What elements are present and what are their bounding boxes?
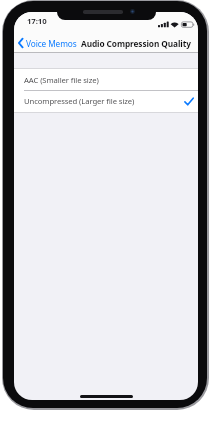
button[interactable]: Uncompressed (Larger file size) [14, 90, 198, 112]
button[interactable]: Voice Memos [14, 32, 77, 54]
staticText: Audio Compression Quality [81, 38, 191, 49]
staticText: AAC (Smaller file size) [24, 75, 99, 85]
staticText: Uncompressed (Larger file size) [24, 96, 135, 106]
button[interactable]: AAC (Smaller file size) [14, 69, 198, 91]
staticText: Voice Memos [26, 38, 77, 49]
staticText: 17:10 [27, 16, 47, 26]
